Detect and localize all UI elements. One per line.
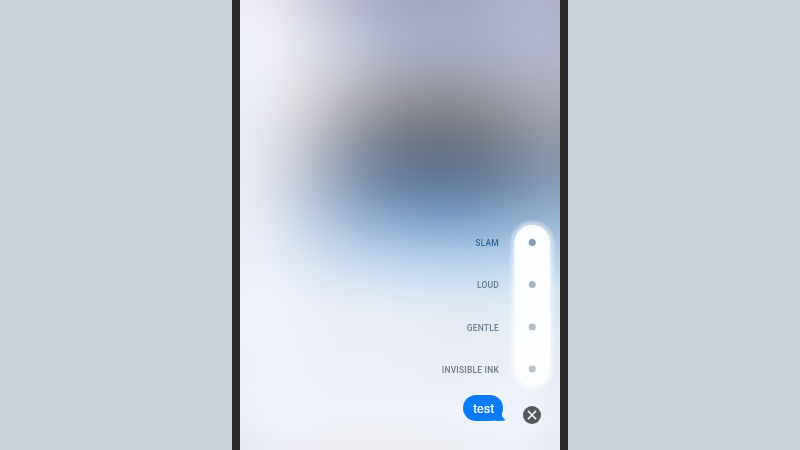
button[interactable]: Close	[523, 406, 541, 424]
button[interactable]: INVISIBLE INK	[240, 360, 499, 380]
button[interactable]: SLAM	[240, 233, 499, 253]
staticText: test	[473, 401, 495, 416]
staticText: INVISIBLE INK	[441, 365, 499, 375]
button[interactable]: LOUD	[240, 275, 499, 295]
button[interactable]: GENTLE	[240, 318, 499, 338]
staticText: GENTLE	[466, 323, 499, 333]
staticText: SLAM	[475, 238, 499, 248]
button[interactable]: test	[463, 395, 506, 421]
staticText: LOUD	[476, 280, 499, 290]
